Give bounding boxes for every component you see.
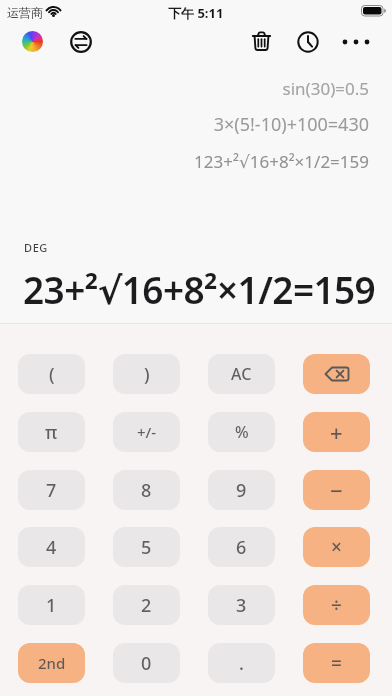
staticText: −: [330, 475, 343, 505]
staticText: 3×(5!-10)+100=430: [213, 112, 369, 137]
staticText: 2nd: [38, 653, 66, 673]
staticText: 4: [46, 535, 57, 560]
staticText: (: [49, 362, 55, 387]
staticText: =: [331, 650, 342, 676]
staticText: π: [45, 420, 58, 445]
staticText: ): [144, 362, 150, 387]
staticText: 8: [141, 478, 152, 503]
staticText: 运营商: [7, 5, 43, 20]
staticText: 1: [46, 593, 57, 618]
staticText: %: [235, 421, 249, 443]
staticText: 6: [236, 535, 247, 560]
staticText: 3: [236, 593, 247, 618]
staticText: 5: [141, 535, 152, 560]
staticText: 7: [46, 478, 57, 503]
staticText: 下午 5:11: [168, 4, 224, 22]
staticText: 2: [141, 593, 152, 618]
staticText: 23+²√16+8²×1/2=159: [23, 264, 376, 314]
staticText: 123+²√16+8²×1/2=159: [194, 150, 369, 173]
staticText: DEG: [24, 240, 48, 255]
staticText: sin(30)=0.5: [282, 77, 369, 100]
staticText: +: [330, 417, 343, 447]
staticText: ×: [331, 534, 342, 560]
staticText: +/-: [137, 422, 157, 442]
staticText: .: [239, 651, 244, 676]
staticText: 0: [141, 651, 152, 676]
staticText: 9: [236, 478, 247, 503]
staticText: AC: [231, 363, 252, 385]
staticText: ÷: [331, 592, 342, 618]
